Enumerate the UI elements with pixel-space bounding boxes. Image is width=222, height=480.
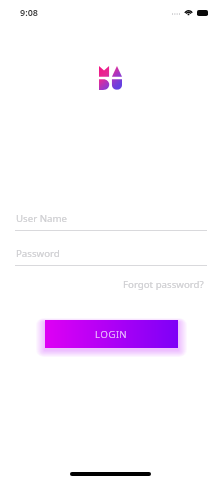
staticText: Forgot password? bbox=[123, 278, 204, 291]
staticText: User Name bbox=[16, 212, 68, 225]
staticText: 9:08 bbox=[20, 6, 38, 18]
staticText: LOGIN bbox=[95, 328, 128, 341]
staticText: Password bbox=[16, 247, 60, 260]
button[interactable]: Forgot password? bbox=[117, 274, 210, 295]
button[interactable]: LOGIN bbox=[45, 320, 178, 348]
